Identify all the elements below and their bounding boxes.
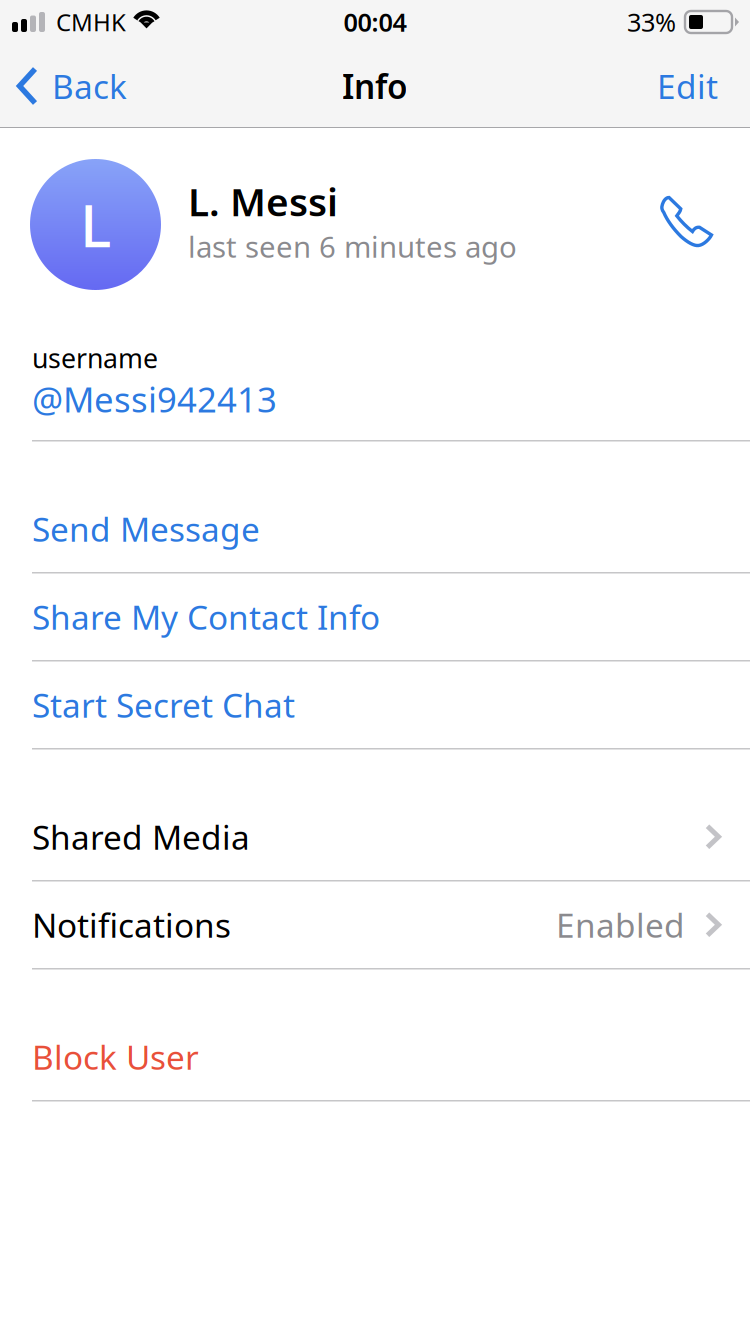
staticText: Enabled xyxy=(556,903,685,947)
staticText: CMHK xyxy=(56,6,126,38)
button[interactable]: Start Secret Chat xyxy=(0,661,750,748)
staticText: Shared Media xyxy=(32,815,250,859)
button[interactable]: Call xyxy=(641,176,729,264)
button[interactable]: @Messi942413 xyxy=(32,380,277,418)
staticText: Share My Contact Info xyxy=(32,595,380,639)
button[interactable]: Shared Media xyxy=(0,793,750,880)
staticText: Notifications xyxy=(32,903,231,947)
staticText: username xyxy=(32,340,158,376)
staticText: Block User xyxy=(32,1035,199,1079)
staticText: Info xyxy=(342,64,408,108)
button[interactable]: Share My Contact Info xyxy=(0,573,750,660)
staticText: L xyxy=(80,185,111,263)
staticText: Send Message xyxy=(32,507,260,551)
staticText: Start Secret Chat xyxy=(32,683,295,727)
button[interactable]: Notifications xyxy=(0,881,750,968)
staticText: L. Messi xyxy=(188,176,338,227)
button[interactable]: Back xyxy=(0,44,141,128)
staticText: last seen 6 minutes ago xyxy=(188,227,517,266)
staticText: Back xyxy=(52,64,127,108)
button[interactable]: Block User xyxy=(0,1013,750,1100)
staticText: 00:04 xyxy=(343,5,406,39)
button[interactable]: Edit xyxy=(625,44,750,128)
button[interactable]: Send Message xyxy=(0,485,750,572)
staticText: @Messi942413 xyxy=(32,376,277,422)
staticText: 33% xyxy=(627,5,676,39)
staticText: Edit xyxy=(657,64,718,108)
